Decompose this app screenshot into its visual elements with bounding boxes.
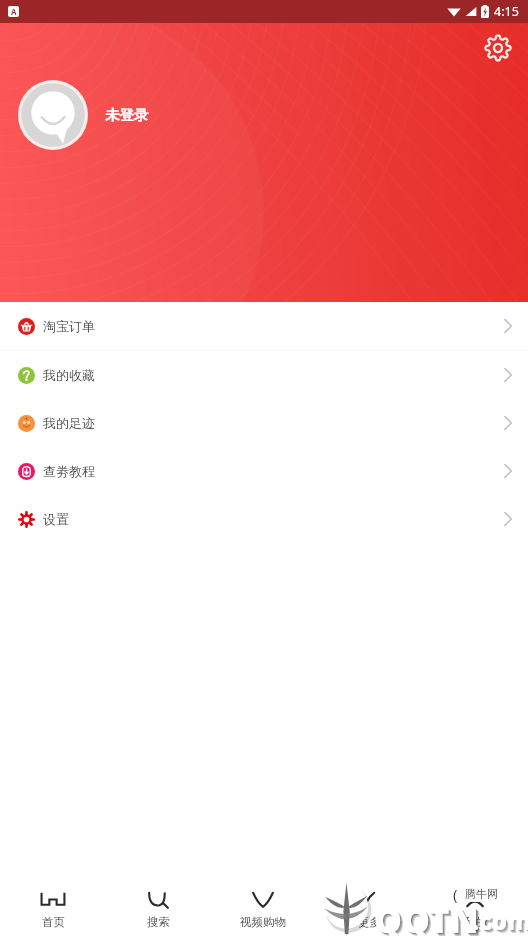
- button[interactable]: 我的: [422, 880, 528, 936]
- staticText: 未登录: [105, 106, 149, 124]
- button[interactable]: 设置: [0, 495, 528, 543]
- staticText: 查劵教程: [43, 463, 95, 479]
- staticText: 我的: [464, 915, 487, 929]
- staticText: .com: [472, 904, 528, 936]
- staticText: 更多: [358, 915, 381, 929]
- button[interactable]: 未登录: [18, 80, 149, 150]
- staticText: 视频购物: [240, 915, 286, 929]
- staticText: 首页: [42, 915, 65, 929]
- staticText: QQTN: [375, 897, 480, 936]
- staticText: A: [11, 6, 17, 17]
- staticText: 搜索: [147, 915, 170, 929]
- staticText: QQTN: [376, 898, 481, 936]
- button[interactable]: 我的收藏: [0, 351, 528, 399]
- staticText: 4:15: [494, 3, 519, 20]
- staticText: 腾牛网: [465, 887, 498, 901]
- staticText: QQTN: [377, 899, 482, 936]
- staticText: 我的足迹: [43, 415, 95, 431]
- button[interactable]: 淘宝订单: [0, 302, 528, 350]
- staticText: 淘宝订单: [43, 318, 95, 334]
- staticText: .com: [473, 905, 528, 936]
- button[interactable]: 视频购物: [210, 880, 316, 936]
- staticText: .com: [475, 907, 528, 936]
- button[interactable]: 搜索: [105, 880, 210, 936]
- staticText: .com: [474, 906, 528, 936]
- staticText: 设置: [43, 511, 69, 527]
- button[interactable]: 我的足迹: [0, 399, 528, 447]
- button[interactable]: 首页: [0, 880, 105, 936]
- button[interactable]: Settings: [480, 30, 516, 66]
- button[interactable]: 查劵教程: [0, 447, 528, 495]
- staticText: 我的收藏: [43, 367, 95, 383]
- staticText: (: [453, 884, 458, 904]
- button[interactable]: 更多: [316, 880, 422, 936]
- staticText: QQTN: [374, 896, 479, 936]
